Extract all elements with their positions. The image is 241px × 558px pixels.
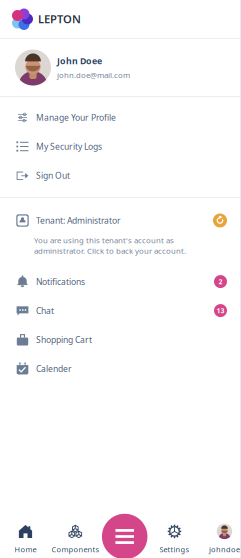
button[interactable]: Notifications — [0, 267, 241, 296]
staticText: john.doe@mail.com — [57, 70, 130, 80]
staticText: Sign Out — [36, 170, 70, 181]
button[interactable]: Menu — [100, 513, 150, 558]
button[interactable]: John Doee — [0, 39, 241, 96]
staticText: John Doee — [57, 55, 102, 67]
staticText: 13 — [216, 306, 224, 315]
staticText: Home — [14, 544, 36, 554]
staticText: 2 — [218, 277, 222, 286]
staticText: johndoe — [209, 544, 240, 554]
button[interactable]: Sign Out — [0, 161, 241, 190]
staticText: Calender — [36, 363, 72, 374]
button[interactable]: Back to your account — [213, 213, 227, 227]
staticText: Manage Your Profile — [36, 112, 116, 123]
button[interactable]: Calender — [0, 354, 241, 383]
button[interactable]: Components — [50, 512, 100, 558]
staticText: Notifications — [36, 276, 85, 287]
button[interactable]: Chat — [0, 296, 241, 325]
button[interactable]: Settings — [149, 512, 199, 558]
staticText: Shopping Cart — [36, 334, 92, 345]
staticText: Tenant: Administrator — [36, 215, 121, 226]
button[interactable]: Manage Your Profile — [0, 103, 241, 132]
staticText: Chat — [36, 305, 54, 316]
button[interactable]: johndoe — [199, 512, 241, 558]
button[interactable]: Home — [0, 512, 50, 558]
staticText: Components — [51, 544, 99, 554]
staticText: Settings — [159, 544, 189, 554]
button[interactable]: Shopping Cart — [0, 325, 241, 354]
button[interactable]: My Security Logs — [0, 132, 241, 161]
staticText: My Security Logs — [36, 141, 102, 152]
staticText: You are using this tenant's account as a… — [34, 235, 186, 256]
staticText: LEPTON — [38, 11, 81, 27]
